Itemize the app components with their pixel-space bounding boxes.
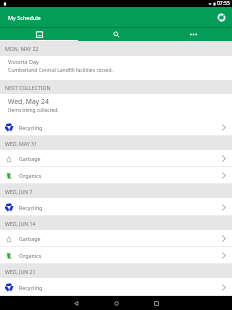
- staticText: WED, MAY 31: [5, 140, 37, 147]
- staticText: Garbage: [19, 155, 41, 162]
- button[interactable]: Home: [96, 296, 136, 310]
- staticText: WED, JUN 7: [5, 188, 33, 195]
- button[interactable]: More: [155, 27, 232, 41]
- staticText: 07:55: [217, 0, 230, 7]
- button[interactable]: Organics: [0, 167, 232, 184]
- staticText: Recycling: [19, 284, 43, 291]
- staticText: NEXT COLLECTION: [5, 84, 51, 91]
- staticText: Recycling: [19, 124, 43, 131]
- staticText: WED, JUN 21: [5, 268, 36, 275]
- staticText: My Schedule: [8, 14, 41, 21]
- button[interactable]: Garbage: [0, 230, 232, 247]
- staticText: Garbage: [19, 235, 41, 242]
- staticText: Items being collected:: [8, 107, 59, 114]
- button[interactable]: Search: [78, 27, 155, 41]
- staticText: Victoria Day: [8, 58, 39, 65]
- staticText: Recycling: [19, 204, 43, 211]
- staticText: Wed, May 24: [8, 97, 49, 106]
- button[interactable]: Recent apps: [136, 296, 176, 310]
- button[interactable]: Recycling: [0, 278, 232, 296]
- button[interactable]: Back: [56, 296, 96, 310]
- button[interactable]: Garbage: [0, 150, 232, 167]
- button[interactable]: Schedule: [0, 27, 78, 41]
- button[interactable]: Recycling: [0, 198, 232, 216]
- staticText: MON, MAY 22: [5, 45, 39, 52]
- staticText: Organics: [19, 252, 42, 259]
- staticText: Organics: [19, 172, 42, 179]
- button[interactable]: Organics: [0, 247, 232, 264]
- staticText: Cumberland Central Landfill facilities c…: [8, 67, 113, 74]
- staticText: WED, JUN 14: [5, 220, 36, 227]
- button[interactable]: Recycling: [0, 118, 232, 136]
- button[interactable]: Refresh: [215, 11, 228, 24]
